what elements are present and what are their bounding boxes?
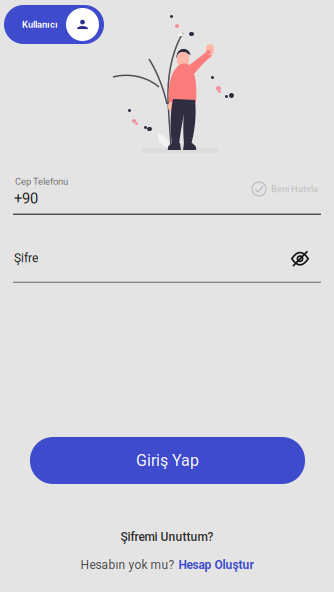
staticText: Beni Hatırla xyxy=(271,183,318,194)
button[interactable]: Hesabın yok mu? xyxy=(0,556,334,574)
staticText: Giriş Yap xyxy=(136,451,199,470)
button[interactable]: Şifremi Unuttum? xyxy=(0,528,334,546)
button[interactable]: Beni Hatırla xyxy=(252,182,318,196)
staticText: Hesap Oluştur xyxy=(178,558,253,572)
button[interactable]: Kullanıcı xyxy=(4,5,104,44)
button[interactable]: Şifreyi göster xyxy=(287,246,313,272)
staticText: Şifre xyxy=(14,251,38,265)
staticText: Hesabın yok mu? xyxy=(80,558,174,572)
staticText: Kullanıcı xyxy=(22,19,58,30)
button[interactable]: Giriş Yap xyxy=(30,437,305,484)
staticText: Şifremi Unuttum? xyxy=(120,530,213,544)
staticText: +90 xyxy=(14,190,38,207)
staticText: Cep Telefonu xyxy=(15,176,68,187)
